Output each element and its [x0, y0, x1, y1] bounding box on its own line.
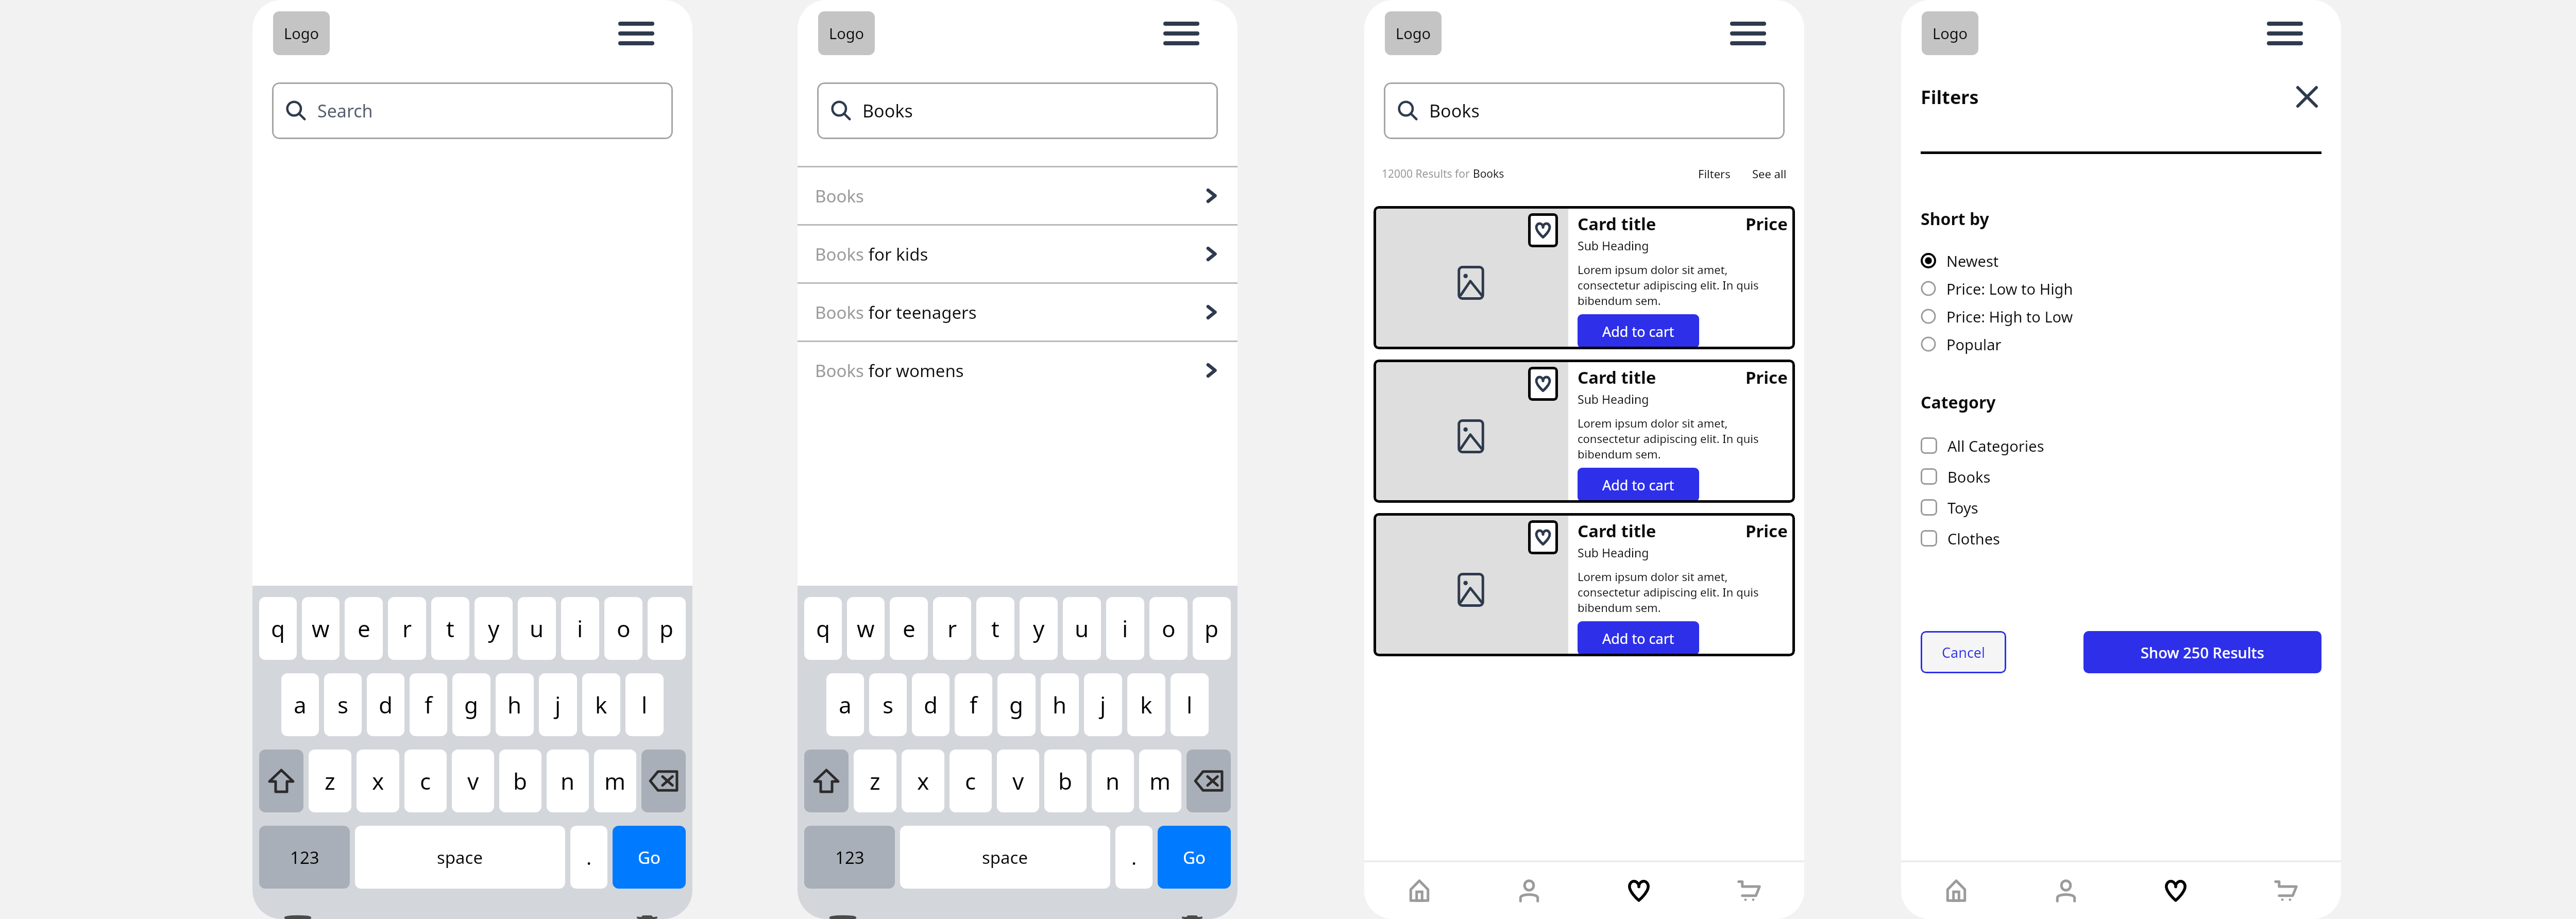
- button[interactable]: Filters: [1698, 166, 1731, 181]
- button[interactable]: Books: [1921, 461, 2341, 492]
- button[interactable]: Home: [1364, 862, 1474, 919]
- button[interactable]: Books: [817, 82, 1218, 139]
- button[interactable]: j: [539, 673, 577, 736]
- button[interactable]: w: [302, 597, 340, 660]
- button[interactable]: Popular: [1921, 330, 2341, 358]
- button[interactable]: Books: [798, 282, 1238, 341]
- button[interactable]: Newest: [1921, 247, 2341, 275]
- button[interactable]: Logo: [273, 11, 330, 55]
- button[interactable]: o: [604, 597, 642, 660]
- button[interactable]: Cart: [1694, 862, 1804, 919]
- button[interactable]: r: [388, 597, 426, 660]
- button[interactable]: n: [1092, 750, 1134, 812]
- button[interactable]: m: [1139, 750, 1181, 812]
- button[interactable]: Profile: [2011, 862, 2121, 919]
- button[interactable]: Menu: [1158, 10, 1205, 57]
- button[interactable]: z: [854, 750, 896, 812]
- button[interactable]: p: [648, 597, 686, 660]
- button[interactable]: Logo: [818, 11, 875, 55]
- button[interactable]: space: [900, 826, 1110, 889]
- button[interactable]: Profile: [1474, 862, 1584, 919]
- button[interactable]: Logo: [1385, 11, 1442, 55]
- button[interactable]: s: [869, 673, 907, 736]
- button[interactable]: Price: High to Low: [1921, 302, 2341, 330]
- button[interactable]: a: [281, 673, 319, 736]
- button[interactable]: y: [1020, 597, 1058, 660]
- button[interactable]: u: [518, 597, 556, 660]
- button[interactable]: Show 250 Results: [2083, 631, 2321, 673]
- button[interactable]: r: [933, 597, 971, 660]
- button[interactable]: q: [259, 597, 297, 660]
- button[interactable]: y: [474, 597, 513, 660]
- button[interactable]: Add to cart: [1578, 468, 1699, 502]
- button[interactable]: Cancel: [1921, 631, 2006, 673]
- button[interactable]: w: [847, 597, 885, 660]
- button[interactable]: g: [997, 673, 1036, 736]
- button[interactable]: e: [345, 597, 383, 660]
- button[interactable]: Add to cart: [1578, 314, 1699, 348]
- button[interactable]: p: [1193, 597, 1231, 660]
- button[interactable]: z: [309, 750, 351, 812]
- button[interactable]: Favorite: [1374, 360, 1795, 503]
- button[interactable]: Home: [1901, 862, 2011, 919]
- button[interactable]: n: [547, 750, 589, 812]
- button[interactable]: Favorite: [1374, 206, 1795, 349]
- button[interactable]: Favorite: [1528, 520, 1558, 554]
- button[interactable]: Emoji: [824, 916, 861, 919]
- button[interactable]: 123: [804, 826, 895, 889]
- button[interactable]: s: [324, 673, 362, 736]
- button[interactable]: Favorites: [1584, 862, 1694, 919]
- button[interactable]: Clothes: [1921, 523, 2341, 554]
- button[interactable]: Add to cart: [1578, 621, 1699, 655]
- button[interactable]: e: [890, 597, 928, 660]
- button[interactable]: Emoji: [279, 916, 316, 919]
- button[interactable]: k: [1127, 673, 1165, 736]
- button[interactable]: i: [1106, 597, 1144, 660]
- button[interactable]: .: [570, 826, 607, 889]
- button[interactable]: a: [826, 673, 864, 736]
- button[interactable]: Go: [613, 826, 686, 889]
- button[interactable]: h: [1041, 673, 1079, 736]
- button[interactable]: d: [367, 673, 404, 736]
- button[interactable]: d: [912, 673, 950, 736]
- button[interactable]: Books: [798, 224, 1238, 282]
- button[interactable]: q: [804, 597, 842, 660]
- button[interactable]: Shift: [259, 750, 303, 812]
- button[interactable]: t: [431, 597, 469, 660]
- button[interactable]: b: [499, 750, 541, 812]
- button[interactable]: Favorite: [1374, 513, 1795, 656]
- button[interactable]: u: [1063, 597, 1101, 660]
- button[interactable]: 123: [259, 826, 350, 889]
- button[interactable]: Cart: [2231, 862, 2341, 919]
- button[interactable]: x: [357, 750, 399, 812]
- button[interactable]: See all: [1752, 166, 1787, 181]
- button[interactable]: Books: [798, 166, 1238, 224]
- button[interactable]: Shift: [804, 750, 849, 812]
- button[interactable]: j: [1084, 673, 1122, 736]
- button[interactable]: Favorite: [1528, 213, 1558, 247]
- button[interactable]: Backspace: [641, 750, 686, 812]
- button[interactable]: x: [902, 750, 944, 812]
- button[interactable]: Menu: [613, 10, 659, 57]
- button[interactable]: l: [625, 673, 664, 736]
- button[interactable]: Price: Low to High: [1921, 275, 2341, 302]
- button[interactable]: f: [410, 673, 447, 736]
- button[interactable]: f: [955, 673, 992, 736]
- button[interactable]: Voice input: [1174, 916, 1211, 919]
- button[interactable]: Favorite: [1528, 367, 1558, 401]
- button[interactable]: Favorites: [2121, 862, 2231, 919]
- button[interactable]: t: [976, 597, 1014, 660]
- button[interactable]: Books: [1384, 82, 1785, 139]
- button[interactable]: space: [355, 826, 565, 889]
- button[interactable]: c: [950, 750, 992, 812]
- button[interactable]: Menu: [1725, 10, 1771, 57]
- button[interactable]: Go: [1158, 826, 1231, 889]
- button[interactable]: h: [496, 673, 534, 736]
- button[interactable]: Voice input: [629, 916, 666, 919]
- button[interactable]: b: [1044, 750, 1087, 812]
- button[interactable]: .: [1115, 826, 1153, 889]
- button[interactable]: v: [997, 750, 1039, 812]
- button[interactable]: l: [1171, 673, 1209, 736]
- button[interactable]: o: [1149, 597, 1188, 660]
- button[interactable]: Search: [272, 82, 673, 139]
